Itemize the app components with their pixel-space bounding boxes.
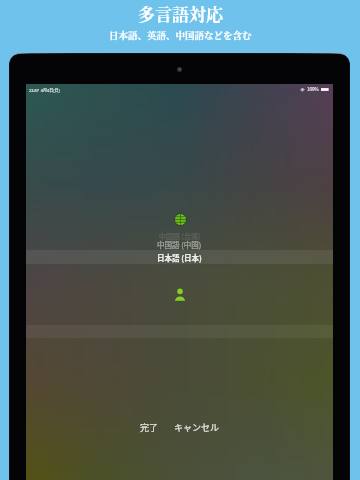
staticText: 中国語 (台湾) (159, 231, 201, 241)
other: Account (174, 288, 186, 301)
staticText: 22:57 4月4日(日) (29, 87, 60, 93)
other: Wi-Fi (300, 87, 305, 92)
button[interactable]: 完了 (137, 419, 162, 436)
staticText: 中国語 (中国) (157, 239, 202, 250)
staticText: 多言語対応 (138, 1, 223, 25)
staticText: 日本語 (日本) (157, 252, 202, 263)
staticText: 日本語、英語、中国語などを含む (109, 28, 252, 42)
staticText: 完了 (140, 421, 159, 434)
other: Language (175, 214, 186, 225)
staticText: 100% (307, 86, 319, 93)
button[interactable]: 日本語 (日本) (26, 250, 333, 264)
button[interactable]: キャンセル (171, 419, 223, 436)
staticText: キャンセル (174, 421, 220, 434)
button[interactable] (26, 325, 333, 338)
other: Battery full (321, 87, 330, 92)
